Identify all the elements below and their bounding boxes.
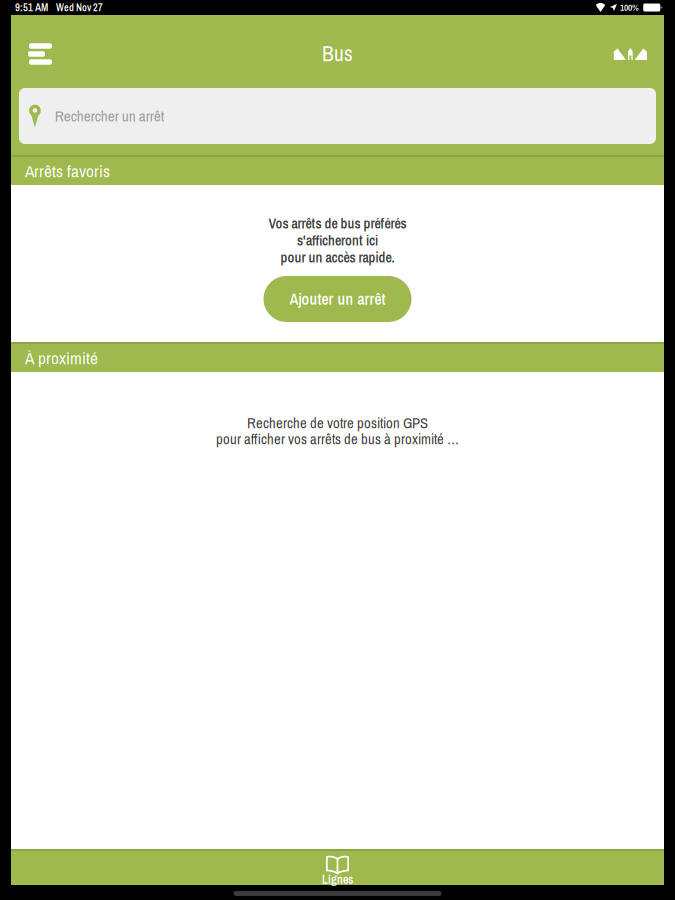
staticText: Vos arrêts de bus préférés — [268, 214, 406, 233]
button[interactable]: Plan des lignes — [594, 15, 664, 88]
staticText: À proximité — [25, 346, 98, 370]
staticText: Lignes — [322, 871, 353, 888]
staticText: pour un accès rapide. — [280, 248, 394, 267]
staticText: Arrêts favoris — [25, 159, 110, 183]
staticText: s'afficheront ici — [297, 231, 378, 250]
button[interactable]: Rechercher un arrêt — [19, 88, 656, 144]
staticText: pour afficher vos arrêts de bus à proxim… — [216, 429, 459, 449]
staticText: 100% — [620, 1, 639, 14]
staticText: Bus — [322, 39, 353, 68]
staticText: 9:51 AM — [15, 0, 48, 15]
button[interactable]: Ajouter un arrêt — [263, 276, 411, 322]
staticText: Recherche de votre position GPS — [247, 413, 428, 433]
staticText: Ajouter un arrêt — [289, 288, 385, 309]
staticText: Wed Nov 27 — [56, 1, 103, 14]
button[interactable]: Menu — [11, 15, 72, 88]
button[interactable]: Lignes — [11, 849, 664, 885]
staticText: Rechercher un arrêt — [55, 106, 164, 126]
